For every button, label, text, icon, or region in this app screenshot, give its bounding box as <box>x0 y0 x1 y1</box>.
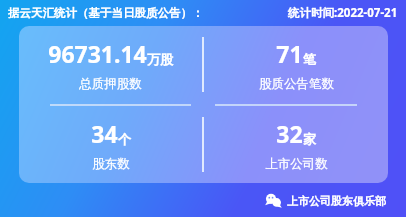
staticText: 统计时间:2022-07-21 <box>288 5 398 21</box>
button[interactable]: WeChat <box>265 192 386 209</box>
staticText: 34 <box>91 118 118 149</box>
other: WeChat <box>265 192 282 209</box>
staticText: 股质公告笔数 <box>259 76 334 92</box>
staticText: 万股 <box>147 51 173 67</box>
staticText: 家 <box>303 131 316 147</box>
staticText: 上市公司数 <box>265 156 328 172</box>
staticText: 96731.14 <box>48 38 147 69</box>
staticText: 71 <box>276 38 303 69</box>
staticText: 总质押股数 <box>79 76 142 92</box>
button[interactable]: 96731.14 <box>19 26 202 103</box>
staticText: 笔 <box>303 51 316 67</box>
button[interactable]: 34 <box>19 106 202 183</box>
staticText: 股东数 <box>92 156 130 172</box>
staticText: 上市公司股东俱乐部 <box>287 194 386 208</box>
button[interactable]: 71 <box>204 26 388 103</box>
staticText: 据云天汇统计（基于当日股质公告）： <box>8 6 204 20</box>
staticText: 32 <box>276 118 303 149</box>
staticText: 个 <box>118 131 131 147</box>
button[interactable]: 32 <box>204 106 388 183</box>
